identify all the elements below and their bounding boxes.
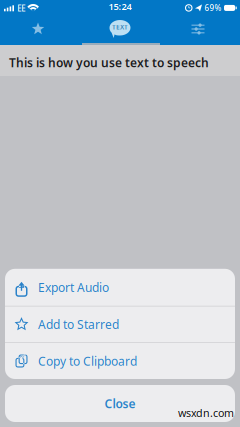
staticText: Close	[104, 395, 135, 411]
staticText: Add to Starred	[38, 316, 119, 332]
button[interactable]: Text	[100, 12, 140, 43]
staticText: Export Audio	[38, 279, 109, 295]
staticText: EE	[17, 3, 25, 14]
staticText: wsxdn.com	[178, 406, 234, 420]
staticText: TEXT	[112, 23, 128, 31]
button[interactable]: Export Audio	[5, 269, 235, 306]
staticText: Copy to Clipboard	[38, 353, 137, 369]
staticText: 69%	[204, 3, 221, 13]
button[interactable]: Starred	[18, 13, 58, 44]
button[interactable]: Copy to Clipboard	[5, 343, 235, 379]
button[interactable]: Settings	[178, 13, 218, 44]
button[interactable]: Close	[5, 385, 235, 422]
staticText: This is how you use text to speech	[9, 54, 209, 70]
staticText: 15:24	[108, 0, 131, 13]
button[interactable]: Add to Starred	[5, 306, 235, 342]
